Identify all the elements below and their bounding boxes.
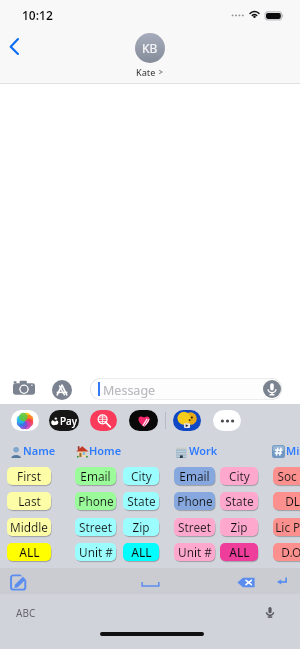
staticText: D.O.B. (281, 544, 300, 560)
button[interactable]: More apps (213, 410, 241, 431)
button[interactable]: State (123, 492, 159, 510)
button[interactable]: Soc Sec (273, 467, 300, 485)
button[interactable]: Unit # (75, 543, 116, 561)
button[interactable]: Street (174, 518, 215, 536)
button[interactable]: Camera (13, 380, 35, 396)
staticText: ALL (19, 544, 40, 560)
button[interactable]: State (220, 492, 258, 510)
button[interactable]: Street (75, 518, 116, 536)
staticText: ALL (131, 544, 152, 560)
button[interactable]: New entry (10, 574, 27, 591)
staticText: Phone (78, 493, 114, 509)
staticText: Phone (177, 493, 213, 509)
button[interactable]: KB (135, 33, 165, 78)
button[interactable]: Unit # (174, 543, 215, 561)
staticText: Lic Plate (275, 519, 300, 535)
button[interactable]: Lic Plate (273, 518, 300, 536)
staticText: Work (189, 443, 218, 458)
staticText: Zip (132, 519, 150, 535)
staticText: Last (18, 493, 41, 509)
staticText: Middle (10, 519, 48, 535)
staticText: Soc Sec (277, 468, 300, 484)
button[interactable]: ABC (8, 600, 28, 614)
staticText: Message (103, 382, 156, 399)
staticText: Kate (136, 66, 156, 78)
staticText: State (127, 493, 156, 509)
button[interactable] (270, 443, 300, 458)
button[interactable]: Middle (7, 518, 51, 536)
staticText: Street (178, 519, 211, 535)
staticText: Unit # (79, 544, 113, 560)
button[interactable]: Phone (174, 492, 215, 510)
button[interactable]: Zip (123, 518, 159, 536)
staticText: State (225, 493, 254, 509)
button[interactable]: D.O.B. (273, 543, 300, 561)
staticText: Pay (60, 414, 78, 428)
staticText: First (17, 468, 41, 484)
button[interactable]: DL # (273, 492, 300, 510)
button[interactable]: ALL (220, 543, 258, 561)
staticText: Email (179, 468, 210, 484)
staticText: Zip (230, 519, 248, 535)
staticText: Home (89, 443, 122, 458)
button[interactable]: ALL (123, 543, 159, 561)
button[interactable]: Audio message (263, 380, 281, 398)
staticText: Email (80, 468, 111, 484)
button[interactable]: Space (141, 581, 160, 587)
staticText: City (131, 468, 152, 484)
button[interactable]: App store (52, 380, 72, 400)
button[interactable]: ALL (7, 543, 51, 561)
staticText: Name (23, 443, 56, 458)
button[interactable]: Email (75, 467, 116, 485)
button[interactable]: Apple Pay (49, 410, 79, 431)
button[interactable]: Last (7, 492, 51, 510)
button[interactable]: City (220, 467, 258, 485)
button[interactable]: Search (90, 410, 117, 431)
staticText: Misc (286, 443, 300, 458)
staticText: Unit # (178, 544, 212, 560)
button[interactable]: Delete (237, 577, 255, 588)
staticText: ABC (16, 606, 36, 620)
button[interactable]: Phone (75, 492, 116, 510)
button[interactable]: Message (90, 378, 282, 400)
button[interactable]: Return (276, 575, 288, 587)
button[interactable]: First (7, 467, 51, 485)
button[interactable]: Dictation (262, 604, 278, 620)
staticText: DL # (285, 493, 300, 509)
button[interactable] (173, 443, 222, 458)
staticText: City (229, 468, 250, 484)
staticText: ALL (229, 544, 250, 560)
button[interactable]: Email (174, 467, 215, 485)
button[interactable]: Zip (220, 518, 258, 536)
button[interactable]: Photos (11, 410, 39, 431)
staticText: 10:12 (22, 7, 53, 23)
button[interactable]: City (123, 467, 159, 485)
button[interactable] (8, 443, 55, 458)
staticText: KB (142, 40, 158, 56)
staticText: Street (79, 519, 112, 535)
button[interactable]: Fitness (129, 410, 158, 431)
button[interactable]: Memoji (173, 410, 201, 431)
button[interactable]: Back (3, 34, 29, 60)
button[interactable] (74, 443, 122, 458)
